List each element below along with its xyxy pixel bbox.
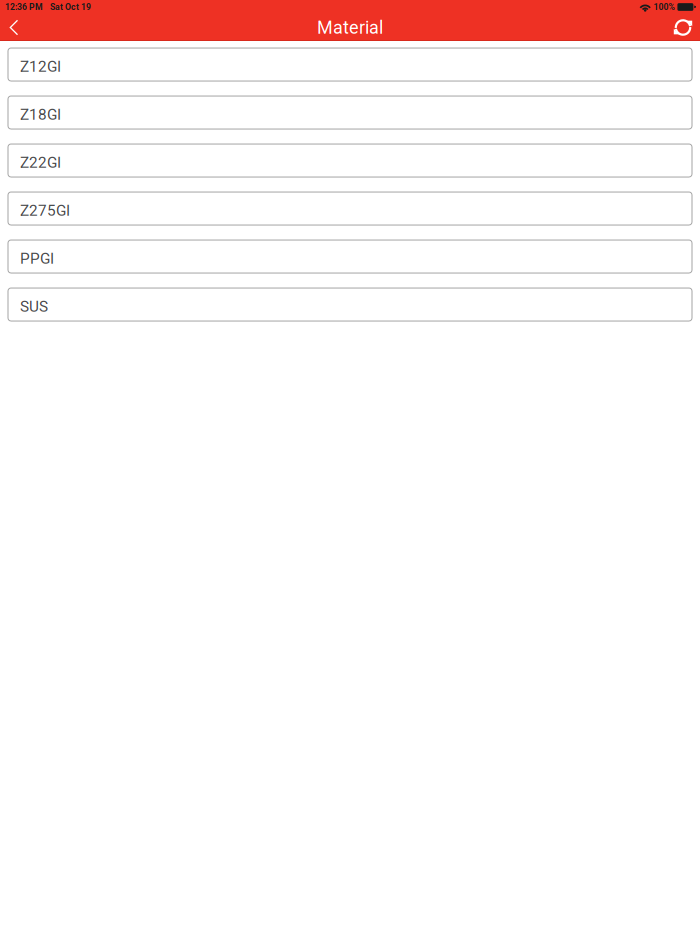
button[interactable]: Z275GI: [8, 192, 692, 225]
staticText: Z12GI: [20, 57, 61, 75]
staticText: SUS: [20, 297, 48, 315]
staticText: Sat Oct 19: [50, 2, 91, 12]
staticText: PPGI: [20, 249, 54, 267]
staticText: 100%: [653, 2, 674, 12]
button[interactable]: Z22GI: [8, 144, 692, 177]
button[interactable]: SUS: [8, 288, 692, 321]
staticText: 12:36 PM: [5, 2, 43, 12]
staticText: Material: [317, 17, 383, 38]
staticText: Z18GI: [20, 105, 61, 123]
staticText: Z22GI: [20, 153, 61, 171]
button[interactable]: Back: [3, 14, 25, 41]
staticText: Z275GI: [20, 201, 70, 219]
button[interactable]: Z12GI: [8, 48, 692, 81]
button[interactable]: Refresh: [668, 15, 698, 39]
button[interactable]: Z18GI: [8, 96, 692, 129]
button[interactable]: PPGI: [8, 240, 692, 273]
